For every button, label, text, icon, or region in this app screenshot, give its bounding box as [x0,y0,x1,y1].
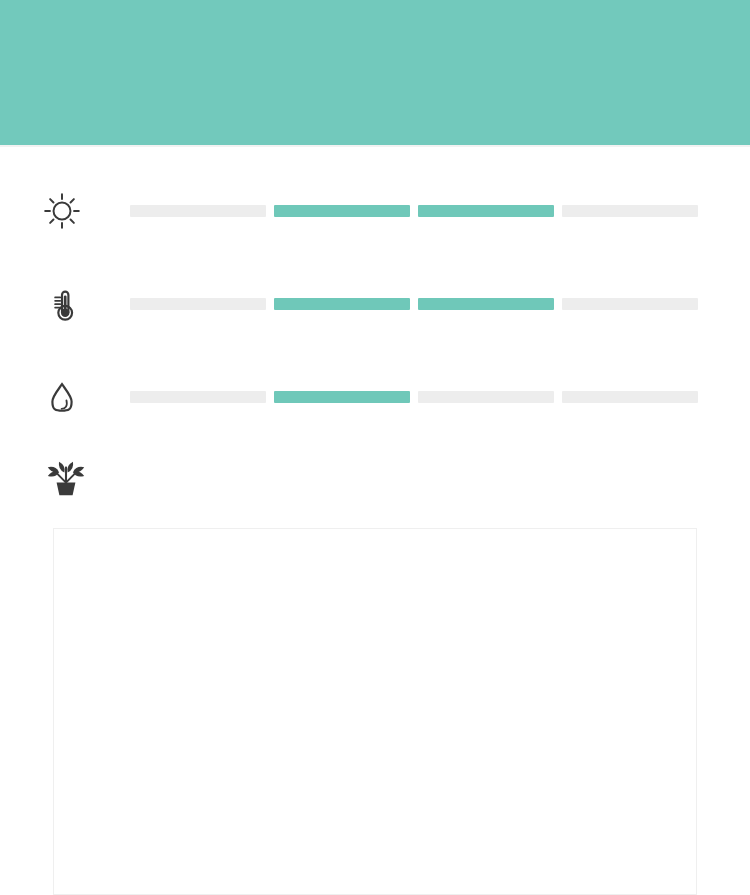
other: Light level [46,195,130,227]
other: Temperature [46,288,130,320]
other: Plant [46,459,130,497]
button[interactable]: Plant [0,453,750,503]
button[interactable]: Humidity [0,367,750,427]
button[interactable]: Light level [0,181,750,241]
other: Humidity [46,381,130,413]
button[interactable]: Temperature [0,274,750,334]
